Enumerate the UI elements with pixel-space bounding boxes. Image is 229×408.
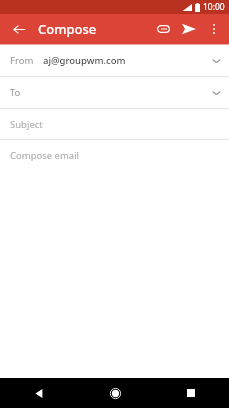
staticText: 10:00: [203, 1, 225, 13]
button[interactable]: Send: [177, 17, 201, 41]
button[interactable]: Back: [8, 18, 30, 40]
button[interactable]: To: [0, 77, 229, 108]
button[interactable]: Attach file: [151, 17, 175, 41]
staticText: Compose: [38, 20, 97, 38]
staticText: From: [10, 54, 34, 67]
button[interactable]: Subject: [0, 109, 229, 139]
button[interactable]: Home: [77, 378, 153, 408]
button[interactable]: More options: [203, 18, 225, 40]
button[interactable]: Compose email: [0, 140, 229, 170]
button[interactable]: From: [0, 45, 229, 76]
staticText: Compose email: [10, 149, 80, 162]
staticText: Subject: [10, 118, 43, 131]
button[interactable]: Recent apps: [153, 378, 229, 408]
staticText: To: [10, 86, 21, 99]
button[interactable]: Back: [0, 378, 77, 408]
staticText: aj@groupwm.com: [43, 54, 126, 67]
